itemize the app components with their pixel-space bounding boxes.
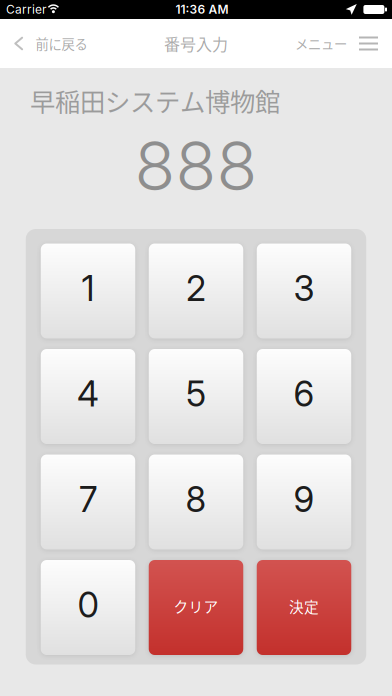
staticText: 番号入力 (164, 32, 228, 55)
staticText: Carrier (6, 2, 47, 17)
button[interactable]: 2 (149, 243, 243, 338)
button[interactable]: 3 (257, 243, 351, 338)
staticText: 早稲田システム博物館 (30, 82, 280, 119)
button[interactable]: 7 (41, 454, 135, 549)
staticText: 5 (186, 373, 206, 415)
staticText: 2 (186, 267, 206, 309)
staticText: 8 (185, 478, 206, 520)
staticText: クリア (173, 595, 218, 617)
button[interactable]: 1 (41, 243, 135, 338)
staticText: 6 (293, 373, 314, 415)
staticText: 9 (293, 478, 314, 520)
button[interactable]: 0 (41, 560, 135, 655)
staticText: 決定 (289, 595, 319, 617)
button[interactable]: 6 (257, 349, 351, 444)
staticText: 4 (77, 373, 99, 415)
staticText: 0 (77, 584, 98, 626)
staticText: 888 (134, 126, 257, 206)
button[interactable]: 5 (149, 349, 243, 444)
button[interactable]: 決定 (257, 560, 351, 655)
staticText: メニュー (295, 34, 347, 53)
button[interactable]: 4 (41, 349, 135, 444)
button[interactable]: 9 (257, 454, 351, 549)
button[interactable]: 前に戻る (0, 19, 97, 68)
staticText: 前に戻る (35, 34, 87, 53)
button[interactable]: クリア (149, 560, 243, 655)
staticText: 11:36 AM (176, 2, 229, 17)
staticText: 3 (293, 267, 314, 309)
staticText: 7 (79, 478, 97, 520)
button[interactable]: 8 (149, 454, 243, 549)
button[interactable]: メニュー (285, 19, 392, 68)
staticText: 1 (81, 267, 94, 309)
